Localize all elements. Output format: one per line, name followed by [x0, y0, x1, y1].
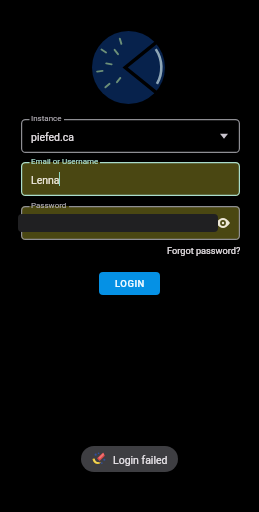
staticText: Lenna: [31, 174, 60, 186]
button[interactable]: [21, 119, 240, 153]
button[interactable]: Show instance options: [217, 129, 231, 143]
staticText: piefed.ca: [31, 131, 75, 143]
staticText: LOGIN: [115, 278, 145, 289]
staticText: Login failed: [113, 454, 168, 466]
button[interactable]: [21, 162, 240, 196]
staticText: Forgot password?: [167, 245, 241, 256]
button[interactable]: Forgot password?: [164, 243, 244, 258]
button[interactable]: Login failed: [81, 446, 178, 472]
button[interactable]: Show password: [214, 214, 232, 232]
button[interactable]: [21, 206, 240, 240]
staticText: Password: [31, 201, 67, 210]
button[interactable]: LOGIN: [99, 272, 160, 295]
staticText: Instance: [31, 114, 62, 123]
staticText: Email or Username: [31, 157, 99, 166]
